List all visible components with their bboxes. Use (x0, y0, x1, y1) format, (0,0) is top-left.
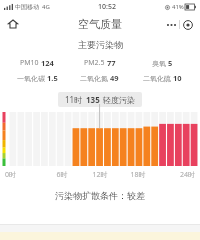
button[interactable]: PM2.5 (68, 58, 131, 83)
staticText: 臭氧 (152, 59, 166, 68)
staticText: 5 (168, 58, 173, 68)
staticText: 124 (41, 58, 54, 68)
button[interactable]: Home (5, 16, 21, 32)
button[interactable]: More options (164, 17, 179, 32)
staticText: 空气质量 (78, 17, 122, 31)
staticText: 10:52 (98, 2, 116, 12)
staticText: 49 (110, 73, 119, 83)
staticText: 135 (86, 94, 100, 105)
staticText: 18时 (119, 170, 157, 180)
button[interactable]: Location (180, 17, 195, 32)
button[interactable]: 污染物扩散条件：较差 (0, 190, 200, 201)
button[interactable]: Hourly air quality chart (0, 110, 200, 168)
staticText: 中国移动 (15, 3, 39, 11)
staticText: PM2.5 (84, 58, 105, 68)
staticText: 6时 (43, 170, 81, 180)
staticText: 1.5 (47, 73, 58, 83)
staticText: 二氧化氮 (80, 74, 108, 83)
staticText: 0时 (5, 170, 43, 180)
button[interactable]: 11时 (58, 92, 142, 107)
staticText: 11时 (65, 94, 83, 105)
staticText: 二氧化硫 (143, 74, 171, 83)
staticText: 12时 (81, 170, 119, 180)
staticText: 污染物扩散条件：较差 (55, 190, 145, 201)
staticText: 77 (107, 58, 116, 68)
staticText: 41% (172, 3, 184, 11)
staticText: 一氧化碳 (17, 74, 45, 83)
staticText: 10 (173, 73, 182, 83)
staticText: 24时 (157, 170, 195, 180)
staticText: PM10 (20, 58, 39, 68)
staticText: 主要污染物 (78, 39, 123, 50)
staticText: 4G (42, 3, 50, 11)
button[interactable]: PM10 (6, 58, 68, 83)
button[interactable]: 臭氧 (131, 58, 194, 83)
staticText: 轻度污染 (103, 95, 135, 105)
